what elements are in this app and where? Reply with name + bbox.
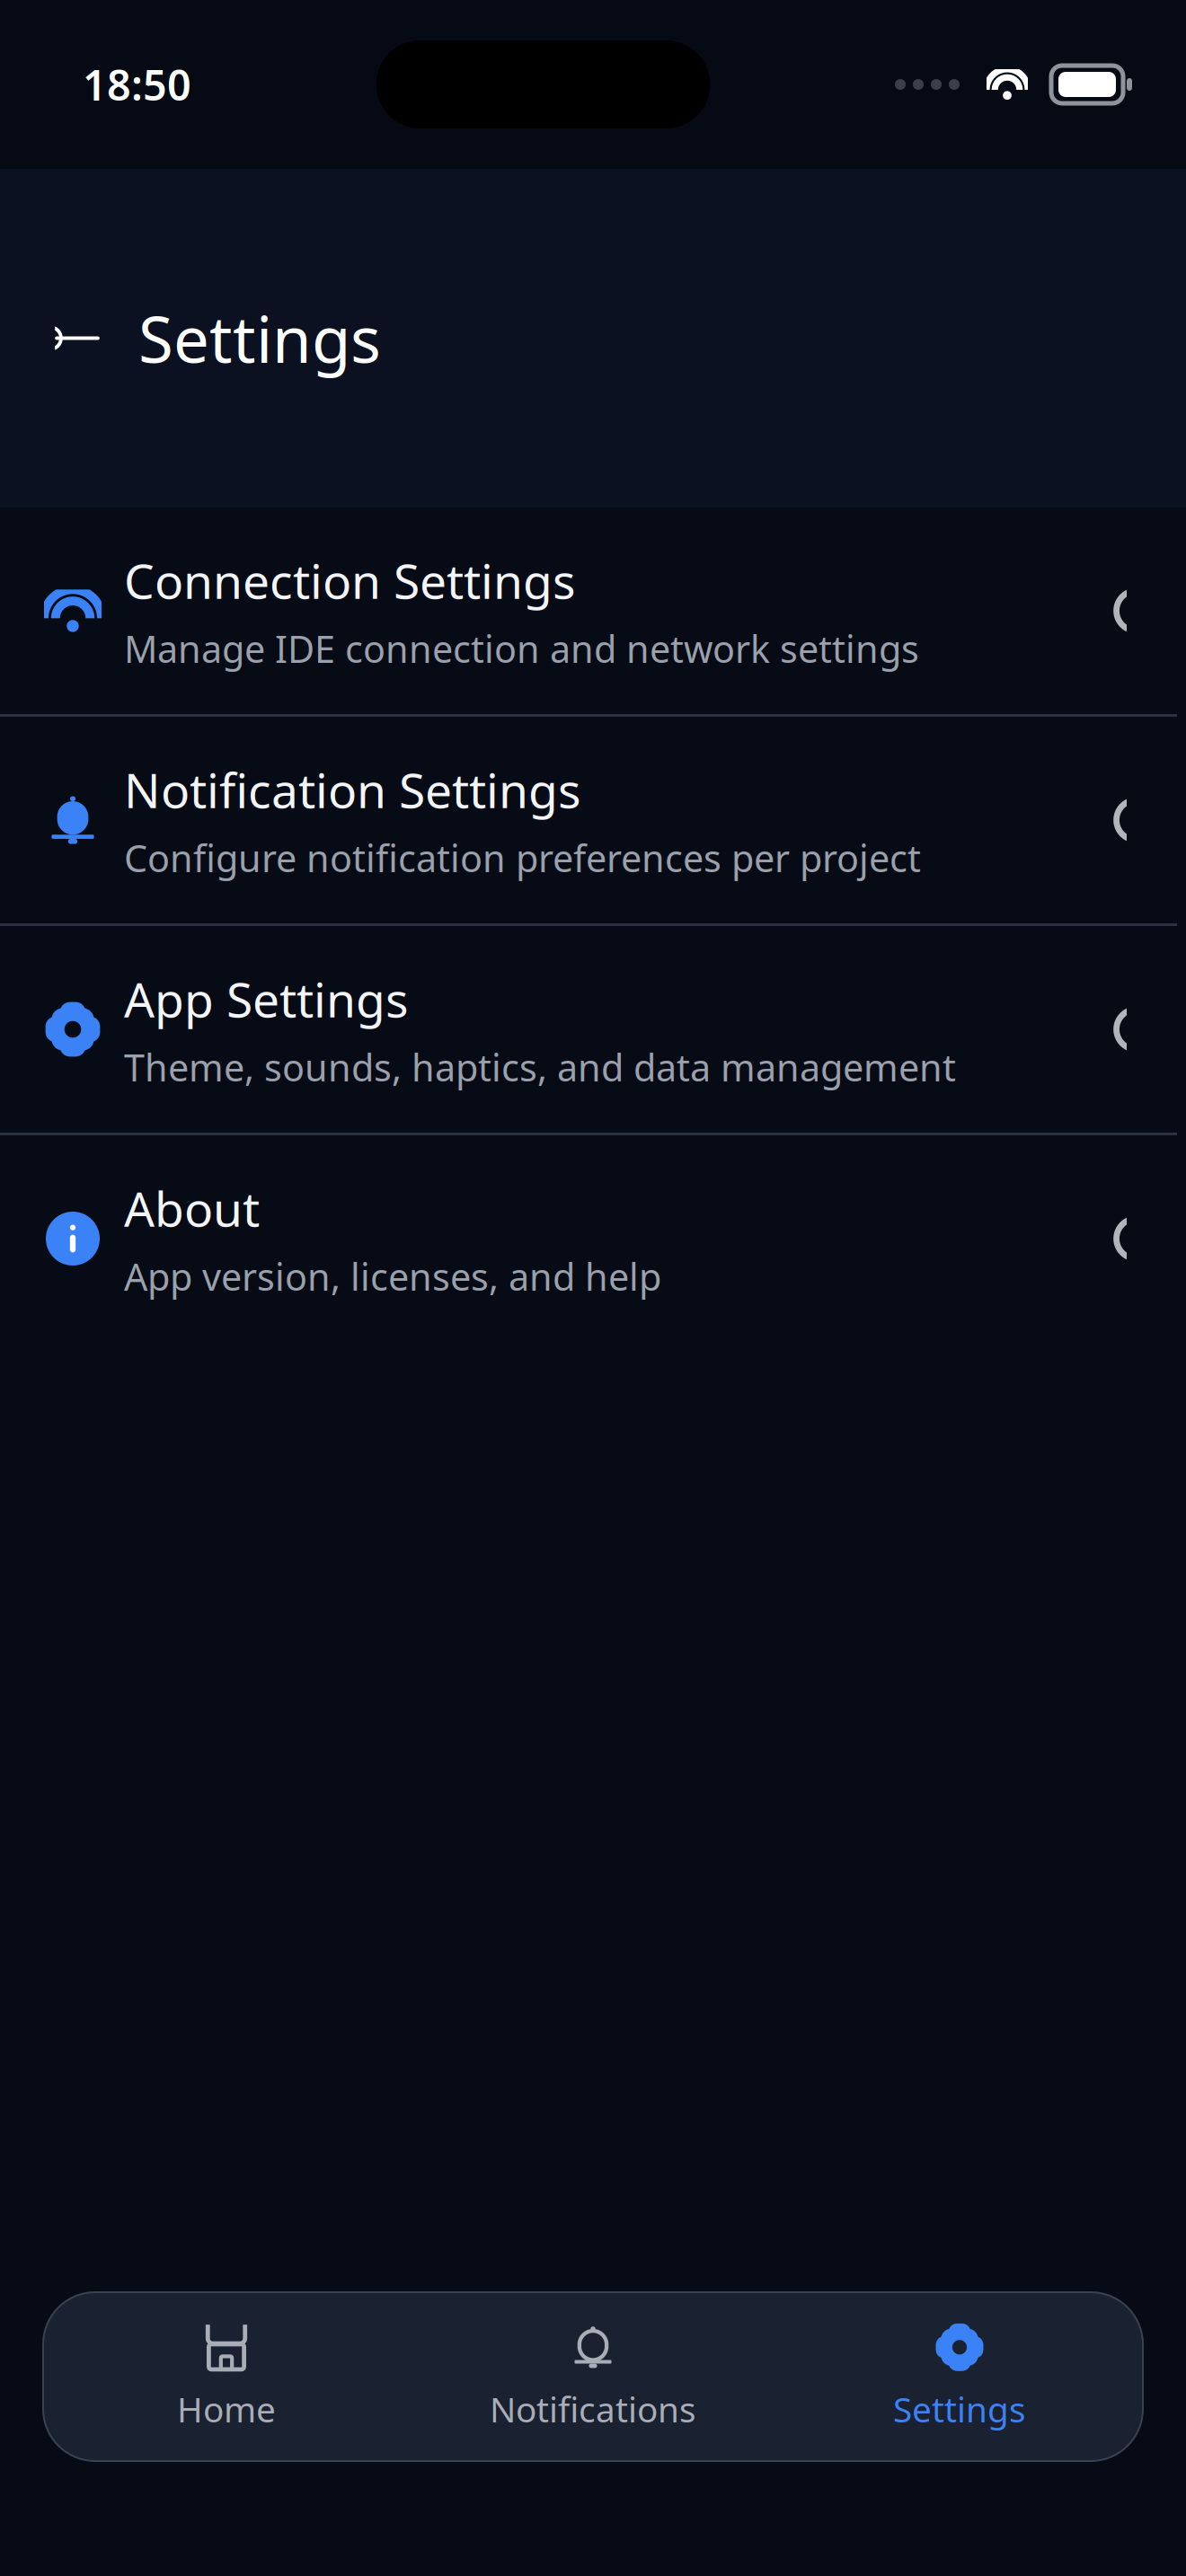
staticText: Settings xyxy=(893,2386,1026,2432)
staticText: Configure notification preferences per p… xyxy=(124,833,921,882)
staticText: Manage IDE connection and network settin… xyxy=(124,624,919,673)
staticText: Notifications xyxy=(490,2386,696,2432)
button[interactable]: Settings xyxy=(776,2294,1143,2459)
button[interactable]: Connection Settings xyxy=(0,507,1186,714)
button[interactable]: Notifications xyxy=(410,2294,776,2459)
staticText: About xyxy=(124,1176,260,1240)
staticText: Notification Settings xyxy=(124,758,581,821)
button[interactable]: Back xyxy=(36,297,119,379)
button[interactable]: Notification Settings xyxy=(0,717,1186,923)
staticText: App Settings xyxy=(124,967,409,1031)
staticText: Theme, sounds, haptics, and data managem… xyxy=(124,1042,956,1092)
button[interactable]: About xyxy=(0,1135,1186,1342)
staticText: App version, licenses, and help xyxy=(124,1252,661,1301)
button[interactable]: Home xyxy=(43,2294,410,2459)
staticText: Connection Settings xyxy=(124,548,576,612)
button[interactable]: App Settings xyxy=(0,926,1186,1133)
staticText: 18:50 xyxy=(83,57,191,112)
staticText: Home xyxy=(177,2386,276,2432)
staticText: Settings xyxy=(138,296,381,380)
